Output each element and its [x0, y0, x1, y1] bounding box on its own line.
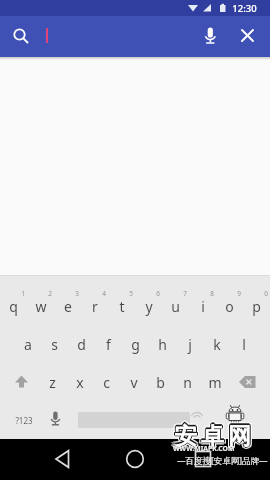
button[interactable]: z: [39, 370, 66, 394]
staticText: x: [76, 373, 84, 392]
button[interactable]: [8, 370, 35, 394]
button[interactable]: g: [122, 332, 149, 356]
staticText: WWW.MIAPK.COM: [173, 444, 235, 453]
staticText: 0: [264, 289, 268, 298]
staticText: 安卓网: [171, 421, 252, 450]
staticText: 安卓网: [173, 422, 254, 451]
staticText: —百度搜[安卓网]品牌—: [177, 455, 268, 467]
button[interactable]: [45, 408, 66, 432]
button[interactable]: b: [147, 370, 174, 394]
button[interactable]: j: [176, 332, 203, 356]
button[interactable]: u: [162, 294, 189, 318]
staticText: 安卓网: [174, 423, 255, 452]
staticText: 12:30: [232, 2, 257, 15]
staticText: j: [188, 335, 192, 354]
staticText: 8: [210, 289, 214, 298]
staticText: f: [106, 335, 111, 354]
staticText: 安卓网: [170, 422, 251, 451]
staticText: 安卓网: [170, 420, 251, 449]
button[interactable]: [8, 23, 34, 49]
staticText: v: [130, 373, 138, 392]
staticText: 4: [102, 289, 106, 298]
staticText: m: [208, 373, 222, 392]
staticText: l: [242, 335, 246, 354]
staticText: h: [158, 335, 167, 354]
button[interactable]: [198, 23, 223, 49]
button[interactable]: q: [0, 294, 27, 318]
button[interactable]: t: [108, 294, 135, 318]
button[interactable]: [78, 412, 190, 428]
staticText: 9: [237, 289, 241, 298]
staticText: n: [183, 373, 192, 392]
button[interactable]: s: [41, 332, 68, 356]
staticText: c: [103, 373, 110, 392]
button[interactable]: [234, 370, 262, 394]
staticText: 2: [48, 289, 52, 298]
button[interactable]: w: [27, 294, 54, 318]
button[interactable]: d: [68, 332, 95, 356]
staticText: k: [213, 335, 221, 354]
button[interactable]: [236, 24, 260, 48]
staticText: 安卓网: [174, 420, 255, 449]
staticText: 安卓网: [172, 419, 253, 448]
staticText: t: [119, 297, 125, 316]
staticText: a: [24, 335, 32, 354]
staticText: 安卓网: [172, 423, 253, 452]
staticText: i: [201, 297, 205, 316]
staticText: 安卓网: [171, 422, 252, 451]
button[interactable]: e: [54, 294, 81, 318]
button[interactable]: f: [95, 332, 122, 356]
button[interactable]: l: [230, 332, 257, 356]
staticText: p: [252, 297, 261, 316]
button[interactable]: [189, 445, 217, 473]
staticText: y: [145, 297, 153, 316]
staticText: d: [77, 335, 86, 354]
button[interactable]: i: [189, 294, 216, 318]
button[interactable]: m: [201, 370, 228, 394]
button[interactable]: r: [81, 294, 108, 318]
button[interactable]: ?123: [7, 408, 41, 432]
staticText: 安卓网: [171, 422, 252, 451]
button[interactable]: v: [120, 370, 147, 394]
button[interactable]: x: [66, 370, 93, 394]
staticText: 6: [156, 289, 160, 298]
button[interactable]: h: [149, 332, 176, 356]
staticText: 3: [75, 289, 79, 298]
button[interactable]: k: [203, 332, 230, 356]
staticText: ?123: [15, 415, 33, 426]
staticText: 安卓网: [172, 420, 253, 449]
button[interactable]: p: [243, 294, 270, 318]
staticText: w: [35, 297, 47, 316]
button[interactable]: o: [216, 294, 243, 318]
staticText: 安卓网: [174, 422, 255, 451]
staticText: b: [156, 373, 165, 392]
staticText: 安卓网: [173, 422, 254, 451]
staticText: 安卓网: [172, 424, 253, 453]
staticText: 1: [21, 289, 25, 298]
staticText: 7: [183, 289, 187, 298]
staticText: 安卓网: [172, 422, 253, 451]
button[interactable]: y: [135, 294, 162, 318]
staticText: 5: [129, 289, 133, 298]
staticText: s: [51, 335, 58, 354]
staticText: 安卓网: [170, 423, 251, 452]
button[interactable]: [48, 445, 76, 473]
staticText: o: [225, 297, 234, 316]
staticText: r: [92, 297, 98, 316]
staticText: q: [9, 297, 18, 316]
button[interactable]: a: [14, 332, 41, 356]
staticText: e: [64, 297, 72, 316]
staticText: u: [171, 297, 180, 316]
button[interactable]: [121, 445, 149, 473]
staticText: z: [49, 373, 56, 392]
staticText: 安卓网: [173, 421, 254, 450]
button[interactable]: n: [174, 370, 201, 394]
button[interactable]: c: [93, 370, 120, 394]
staticText: g: [131, 335, 140, 354]
